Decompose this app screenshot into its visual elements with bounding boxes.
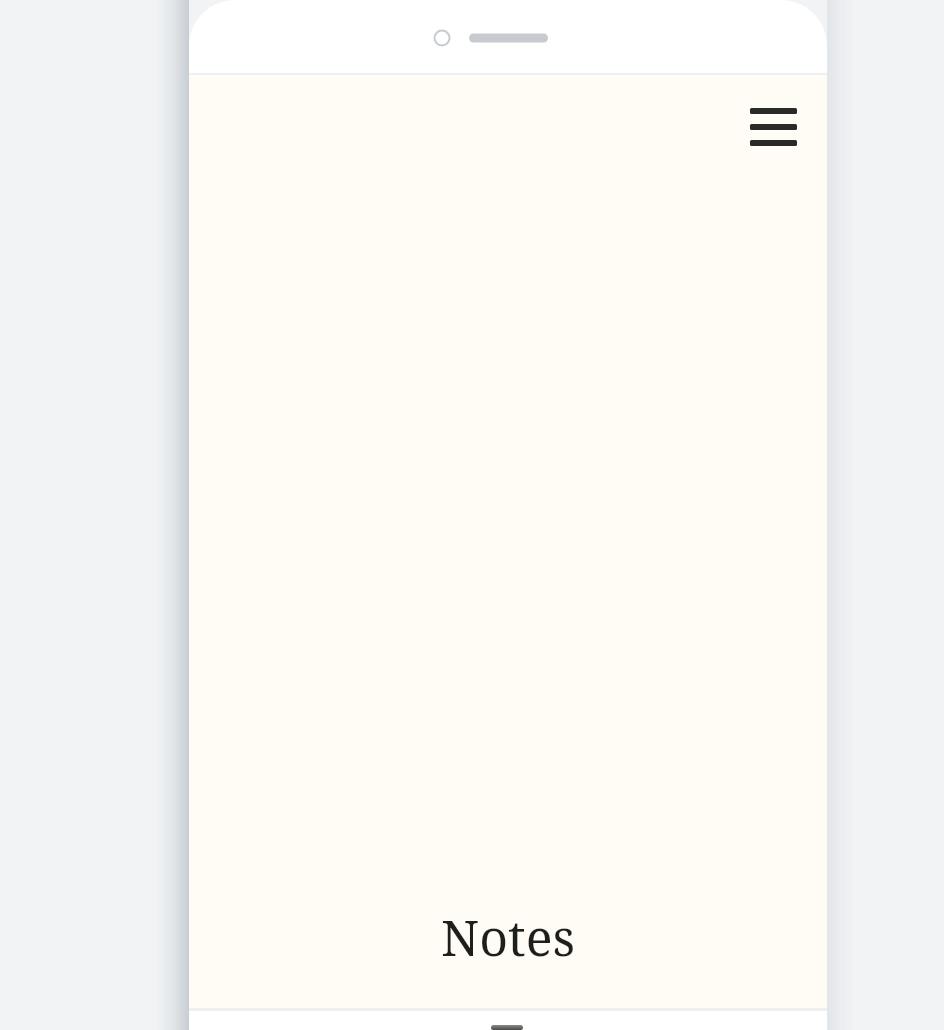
button[interactable]: Notes	[189, 898, 827, 976]
staticText: Notes	[441, 903, 575, 971]
button[interactable]: Open navigation menu	[734, 88, 813, 167]
